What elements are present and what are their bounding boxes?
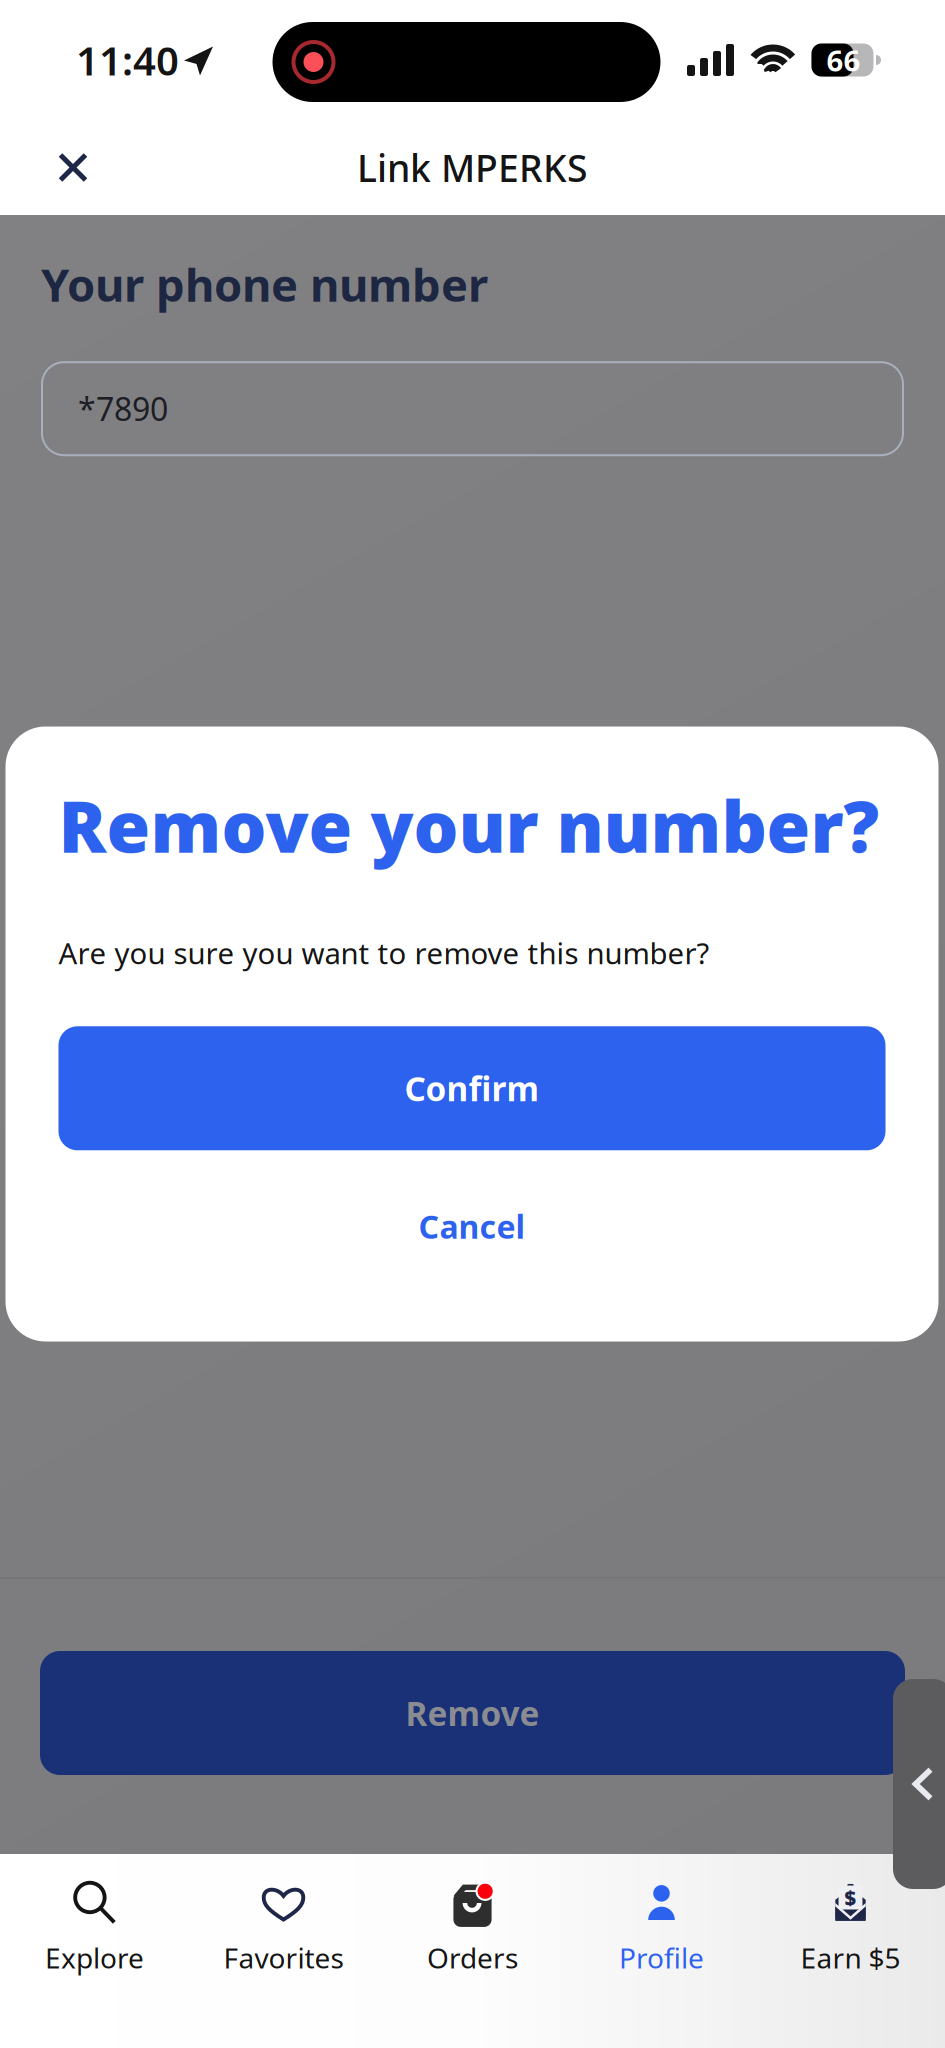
- button[interactable]: Confirm: [58, 972, 885, 1150]
- button[interactable]: Remove: [0, 1579, 905, 1854]
- button[interactable]: Profile: [567, 1854, 756, 2048]
- staticText: Profile: [619, 1939, 704, 1976]
- staticText: *7890: [78, 387, 168, 430]
- staticText: Orders: [427, 1939, 518, 1976]
- staticText: Favorites: [223, 1939, 343, 1976]
- staticText: $: [844, 1884, 856, 1911]
- staticText: Remove: [405, 1691, 539, 1735]
- button[interactable]: $: [756, 1854, 945, 2048]
- staticText: 11:40: [76, 33, 179, 86]
- staticText: Explore: [45, 1939, 144, 1976]
- staticText: Remove your number?: [58, 778, 879, 872]
- staticText: Are you sure you want to remove this num…: [58, 933, 709, 972]
- button[interactable]: Orders: [378, 1854, 567, 2048]
- staticText: Confirm: [404, 1066, 539, 1110]
- staticText: Link MPERKS: [357, 143, 588, 192]
- button[interactable]: Explore: [0, 1854, 189, 2048]
- staticText: 66: [826, 40, 860, 79]
- button[interactable]: Cancel: [58, 1150, 885, 1266]
- button[interactable]: Open panel: [893, 1679, 945, 1889]
- button[interactable]: Favorites: [189, 1854, 378, 2048]
- staticText: Your phone number: [41, 254, 488, 314]
- staticText: Cancel: [418, 1205, 525, 1247]
- button[interactable]: Close: [0, 130, 112, 204]
- staticText: Earn $5: [800, 1939, 900, 1976]
